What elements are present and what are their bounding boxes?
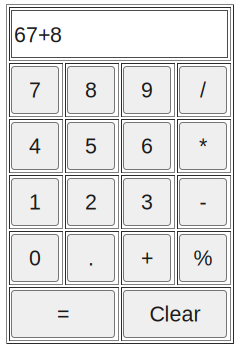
staticText: = (57, 302, 69, 326)
staticText: * (199, 134, 207, 158)
staticText: % (193, 246, 212, 270)
button[interactable]: 1 (9, 175, 63, 229)
button[interactable]: 7 (9, 63, 63, 117)
button[interactable]: = (9, 287, 119, 341)
button[interactable]: + (121, 231, 175, 285)
staticText: 7 (29, 78, 41, 102)
button[interactable]: 3 (121, 175, 175, 229)
staticText: 3 (141, 190, 153, 214)
button[interactable]: - (177, 175, 231, 229)
staticText: 0 (29, 246, 41, 270)
staticText: 2 (85, 190, 97, 214)
staticText: 8 (85, 78, 97, 102)
staticText: 1 (29, 190, 41, 214)
button[interactable]: * (177, 119, 231, 173)
staticText: / (200, 78, 206, 102)
staticText: 5 (85, 134, 97, 158)
button[interactable]: Clear (121, 287, 231, 341)
staticText: . (88, 246, 94, 270)
staticText: 6 (141, 134, 153, 158)
button[interactable]: 8 (65, 63, 119, 117)
button[interactable]: . (65, 231, 119, 285)
button[interactable]: 2 (65, 175, 119, 229)
staticText: 4 (29, 134, 41, 158)
staticText: - (199, 190, 206, 214)
staticText: 9 (141, 78, 153, 102)
button[interactable]: 4 (9, 119, 63, 173)
button[interactable]: 0 (9, 231, 63, 285)
staticText: Clear (149, 302, 200, 326)
button[interactable]: / (177, 63, 231, 117)
staticText: 67+8 (14, 23, 62, 47)
button[interactable]: 6 (121, 119, 175, 173)
staticText: + (141, 246, 153, 270)
button[interactable]: 9 (121, 63, 175, 117)
button[interactable]: % (177, 231, 231, 285)
button[interactable]: 5 (65, 119, 119, 173)
